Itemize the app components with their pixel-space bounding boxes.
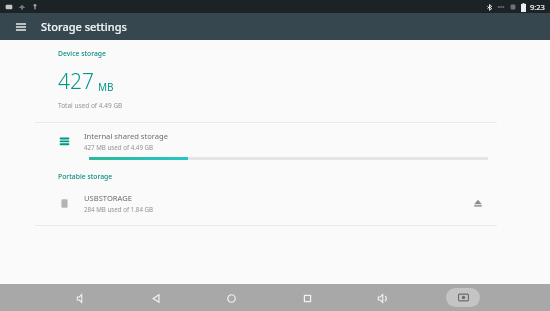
button[interactable]: Back	[145, 287, 167, 309]
staticText: Portable storage	[58, 172, 113, 181]
staticText: Storage settings	[41, 19, 127, 34]
button[interactable]: Recent apps	[296, 287, 318, 309]
button[interactable]: Eject USB storage	[468, 193, 488, 213]
staticText: Total used of 4.49 GB	[58, 101, 123, 110]
staticText: 427 MB used of 4.49 GB	[84, 143, 154, 151]
staticText: 9:23	[530, 2, 545, 12]
staticText: 284 MB used of 1.84 GB	[84, 205, 154, 213]
button[interactable]: Home	[220, 287, 242, 309]
staticText: MB	[98, 80, 114, 94]
button[interactable]: Open navigation menu	[10, 16, 32, 38]
staticText: Device storage	[58, 49, 106, 58]
staticText: Internal shared storage	[84, 131, 168, 141]
button[interactable]: Take screenshot	[446, 288, 480, 307]
button[interactable]: USBSTORAGE	[5, 189, 545, 217]
button[interactable]: Volume up	[371, 287, 393, 309]
staticText: USBSTORAGE	[84, 193, 132, 203]
button[interactable]: Volume down	[70, 287, 92, 309]
button[interactable]: Internal shared storage	[5, 123, 545, 162]
staticText: 427	[58, 67, 94, 96]
